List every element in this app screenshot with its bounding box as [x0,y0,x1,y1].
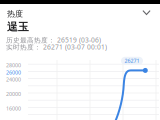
staticText: 热度 [7,9,23,19]
staticText: 实时热度： 26271 (03-07 00:01) [6,42,107,51]
staticText: 历史最高热度： 26519 (03-06) [6,35,101,44]
staticText: 24000 [6,76,21,83]
staticText: 26000 [6,69,21,76]
staticText: 20000 [6,90,21,97]
button[interactable]: Collapse [140,6,153,19]
staticText: 26271 [124,57,139,64]
staticText: 28000 [6,62,21,69]
staticText: 逞玉 [7,20,29,34]
staticText: 16000 [6,105,21,112]
